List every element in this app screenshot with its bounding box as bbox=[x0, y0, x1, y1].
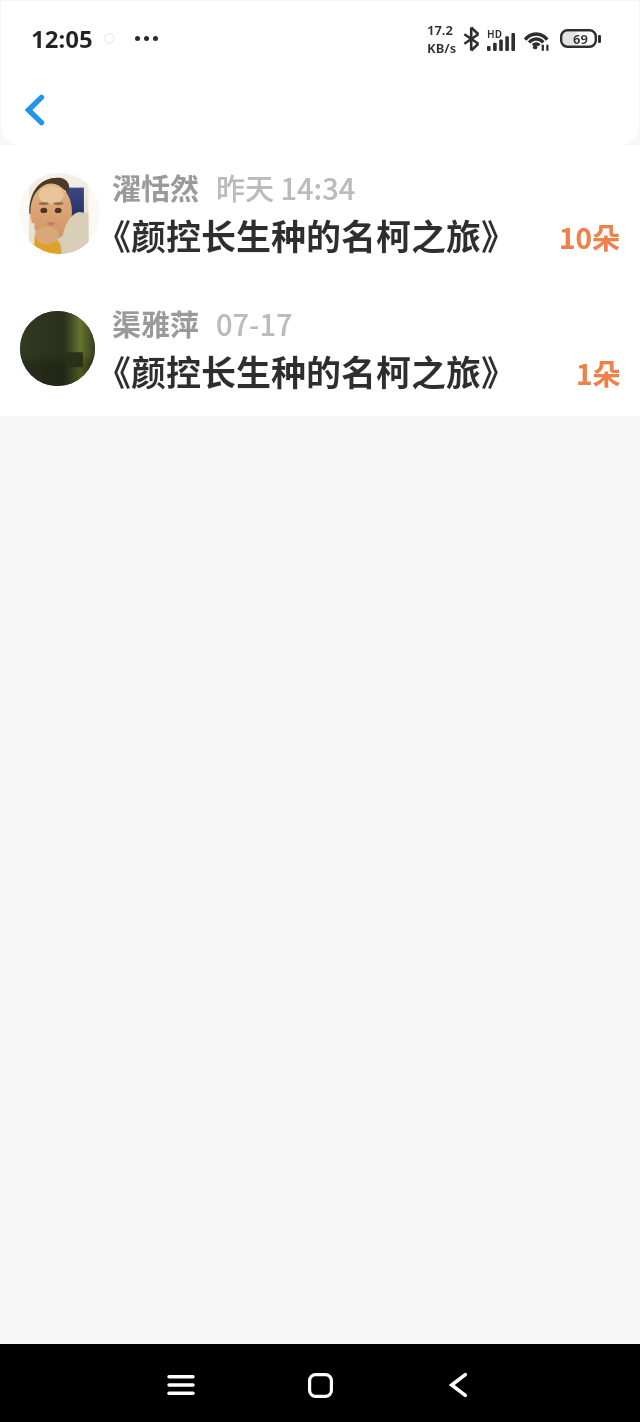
staticText: HD bbox=[487, 27, 502, 41]
staticText: 1朵 bbox=[576, 353, 621, 394]
staticText: 12:05 bbox=[31, 22, 93, 55]
staticText: KB/s bbox=[427, 39, 457, 57]
button[interactable]: Back bbox=[7, 82, 63, 138]
staticText: 《颜控长生种的名柯之旅》 bbox=[96, 345, 517, 396]
button[interactable]: 濯恬然 bbox=[0, 145, 640, 281]
button[interactable]: 渠雅萍 bbox=[0, 281, 640, 416]
staticText: 《颜控长生种的名柯之旅》 bbox=[96, 209, 517, 260]
staticText: 69 bbox=[573, 30, 588, 48]
button[interactable]: Back bbox=[423, 1346, 493, 1422]
staticText: 濯恬然 bbox=[112, 166, 200, 208]
staticText: 17.2 bbox=[427, 21, 453, 39]
staticText: 10朵 bbox=[559, 217, 621, 258]
button[interactable]: Recent apps bbox=[146, 1346, 216, 1422]
staticText: 昨天 14:34 bbox=[216, 166, 356, 208]
staticText: 07-17 bbox=[216, 302, 293, 344]
staticText: 渠雅萍 bbox=[112, 302, 200, 344]
button[interactable]: Home bbox=[285, 1346, 355, 1422]
